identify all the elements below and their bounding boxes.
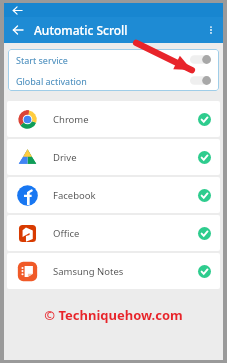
staticText: Global activation <box>16 75 87 87</box>
staticText: Drive <box>53 151 77 164</box>
button[interactable]: Facebook <box>7 177 220 213</box>
button[interactable]: More options <box>201 20 221 40</box>
staticText: Samsung Notes <box>53 265 124 278</box>
button[interactable]: Chrome <box>7 101 220 137</box>
button[interactable]: Office <box>7 215 220 251</box>
staticText: Chrome <box>53 113 89 126</box>
staticText: Facebook <box>53 189 96 202</box>
staticText: © Techniquehow.com <box>4 306 223 324</box>
staticText: Start service <box>16 54 68 66</box>
button[interactable]: Back <box>8 20 28 40</box>
staticText: Automatic Scroll <box>34 22 128 38</box>
button[interactable]: Drive <box>7 139 220 175</box>
button[interactable]: Global activation <box>8 70 219 91</box>
button[interactable]: Start service <box>8 49 219 70</box>
staticText: Office <box>53 227 80 240</box>
button[interactable]: Samsung Notes <box>7 253 220 289</box>
